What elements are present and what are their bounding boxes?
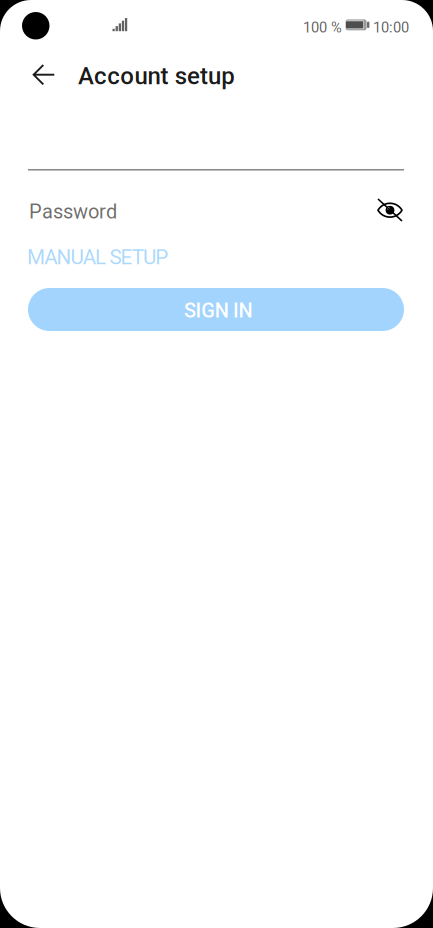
staticText: 10:00 <box>373 19 409 36</box>
button[interactable]: Show password <box>368 188 412 232</box>
staticText: MANUAL SETUP <box>27 245 168 269</box>
staticText: Password <box>29 200 117 223</box>
button[interactable]: SIGN IN <box>28 288 404 331</box>
button[interactable]: MANUAL SETUP <box>27 241 177 267</box>
staticText: Account setup <box>78 62 234 90</box>
button[interactable]: Back <box>21 50 69 98</box>
staticText: SIGN IN <box>184 299 253 322</box>
staticText: 100 % <box>303 19 342 36</box>
